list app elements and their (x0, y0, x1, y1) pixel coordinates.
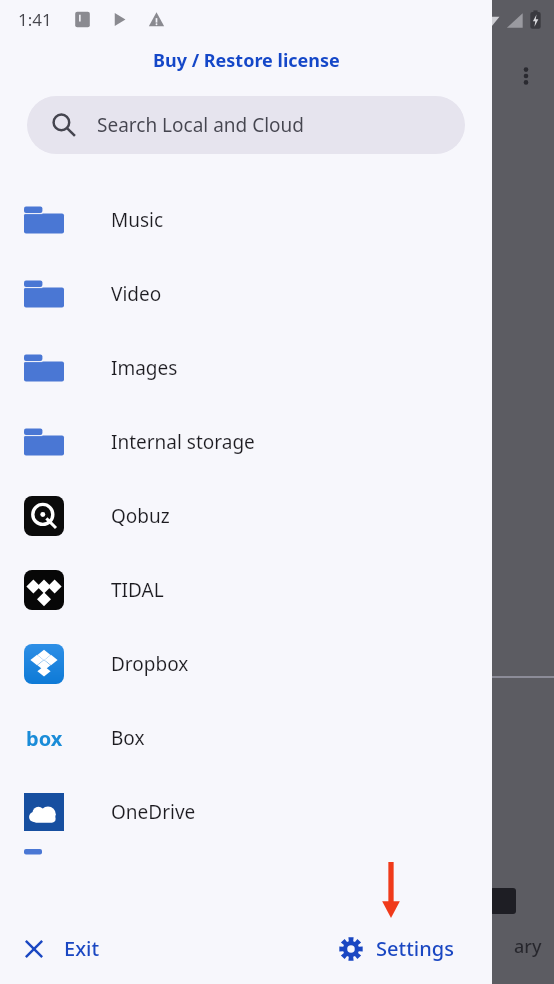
staticText: Dropbox (111, 651, 189, 677)
staticText: Buy / Restore license (153, 48, 340, 73)
button[interactable]: TIDAL (0, 553, 492, 627)
staticText: Search Local and Cloud (97, 112, 305, 138)
button[interactable]: Buy / Restore license (0, 38, 492, 82)
staticText: Music (111, 207, 164, 233)
button[interactable]: Exit (14, 927, 108, 970)
button[interactable]: Video (0, 257, 492, 331)
staticText: TIDAL (111, 577, 164, 603)
staticText: ary (514, 934, 542, 959)
staticText: Internal storage (111, 429, 255, 455)
button[interactable]: Internal storage (0, 405, 492, 479)
button[interactable]: Search Local and Cloud (27, 96, 465, 154)
button[interactable]: Qobuz (0, 479, 492, 553)
staticText: Images (111, 355, 178, 381)
button[interactable]: Settings (330, 927, 462, 970)
button[interactable]: Music (0, 183, 492, 257)
staticText: box (26, 725, 63, 752)
staticText: Exit (64, 935, 100, 962)
button[interactable]: OneDrive (0, 775, 492, 849)
staticText: Box (111, 725, 145, 751)
button[interactable]: Images (0, 331, 492, 405)
staticText: Qobuz (111, 503, 170, 529)
staticText: Video (111, 281, 162, 307)
staticText: Settings (376, 935, 454, 962)
button[interactable]: More options (506, 56, 546, 96)
button[interactable]: Dropbox (0, 627, 492, 701)
button[interactable]: box (0, 701, 492, 775)
staticText: OneDrive (111, 799, 196, 825)
staticText: 1:41 (18, 8, 52, 31)
